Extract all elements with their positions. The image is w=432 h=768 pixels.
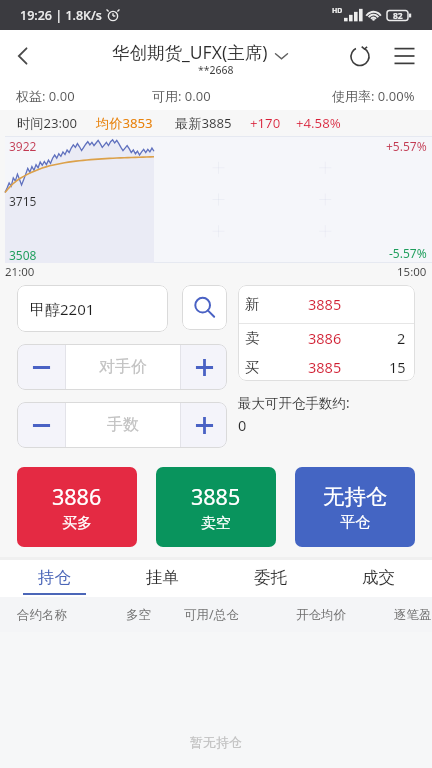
staticText: 权益: 0.00 xyxy=(16,87,75,105)
staticText: 挂单 xyxy=(146,567,179,588)
button[interactable]: 无持仓 xyxy=(295,467,415,547)
button[interactable]: 持仓 xyxy=(0,560,108,597)
staticText: 持仓 xyxy=(38,567,71,588)
staticText: 3885 xyxy=(308,294,342,314)
staticText: 手数 xyxy=(107,415,139,435)
staticText: 3886 xyxy=(52,482,102,511)
staticText: 21:00 xyxy=(5,264,35,280)
staticText: 最新3885 xyxy=(175,114,232,132)
staticText: 成交 xyxy=(362,567,395,588)
staticText: 委托 xyxy=(254,567,287,588)
staticText: 2 xyxy=(397,328,406,348)
staticText: 逐笔盈 xyxy=(394,607,432,623)
staticText: +170 xyxy=(250,114,281,132)
staticText: 开仓均价 xyxy=(296,607,346,623)
button[interactable]: 3885 xyxy=(156,467,276,547)
staticText: 卖空 xyxy=(201,514,231,533)
button[interactable]: Back xyxy=(0,30,46,82)
staticText: 3886 xyxy=(308,328,342,348)
staticText: 3715 xyxy=(9,193,37,209)
staticText: 卖 xyxy=(245,329,260,347)
button[interactable]: 对手价 xyxy=(66,344,180,390)
staticText: 可用/总仓 xyxy=(184,606,239,623)
button[interactable]: Decrease xyxy=(17,402,65,448)
staticText: 时间23:00 xyxy=(17,114,78,132)
staticText: 3885 xyxy=(191,482,241,511)
staticText: 华创期货_UFX(主席) xyxy=(112,40,268,64)
button[interactable]: 委托 xyxy=(216,560,324,597)
staticText: 82 xyxy=(393,10,403,22)
button[interactable]: Refresh xyxy=(338,34,382,78)
staticText: 甲醇2201 xyxy=(30,299,95,319)
staticText: 合约名称 xyxy=(17,607,67,623)
button[interactable]: Search xyxy=(182,285,227,330)
staticText: 对手价 xyxy=(99,357,147,377)
button[interactable]: 3886 xyxy=(17,467,137,547)
staticText: 均价3853 xyxy=(96,114,153,132)
staticText: 3885 xyxy=(308,357,342,377)
staticText: **2668 xyxy=(198,63,234,77)
staticText: -5.57% xyxy=(389,245,427,261)
staticText: 3508 xyxy=(9,247,37,263)
staticText: 0 xyxy=(238,415,247,435)
staticText: 买 xyxy=(245,358,260,376)
staticText: 暂无持仓 xyxy=(190,734,242,750)
staticText: 19:26 | 1.8K/s xyxy=(20,7,102,24)
staticText: 多空 xyxy=(126,607,151,623)
staticText: 使用率: 0.00% xyxy=(332,87,415,105)
button[interactable]: 挂单 xyxy=(108,560,216,597)
button[interactable]: Increase xyxy=(181,344,227,390)
staticText: HD xyxy=(332,6,343,16)
button[interactable]: 甲醇2201 xyxy=(17,285,168,332)
staticText: 15:00 xyxy=(397,264,427,280)
staticText: 3922 xyxy=(9,138,37,154)
staticText: 新 xyxy=(245,295,260,313)
staticText: +5.57% xyxy=(386,138,427,154)
button[interactable]: Decrease xyxy=(17,344,65,390)
button[interactable]: 手数 xyxy=(66,402,180,448)
staticText: 买多 xyxy=(62,514,92,533)
staticText: 无持仓 xyxy=(323,483,388,510)
button[interactable]: Menu xyxy=(382,34,426,78)
staticText: +4.58% xyxy=(296,114,341,132)
staticText: 可用: 0.00 xyxy=(152,87,211,105)
button[interactable]: Increase xyxy=(181,402,227,448)
staticText: 最大可开仓手数约: xyxy=(238,394,350,412)
staticText: 平仓 xyxy=(340,513,370,532)
button[interactable]: 成交 xyxy=(324,560,432,597)
staticText: 15 xyxy=(389,357,406,377)
